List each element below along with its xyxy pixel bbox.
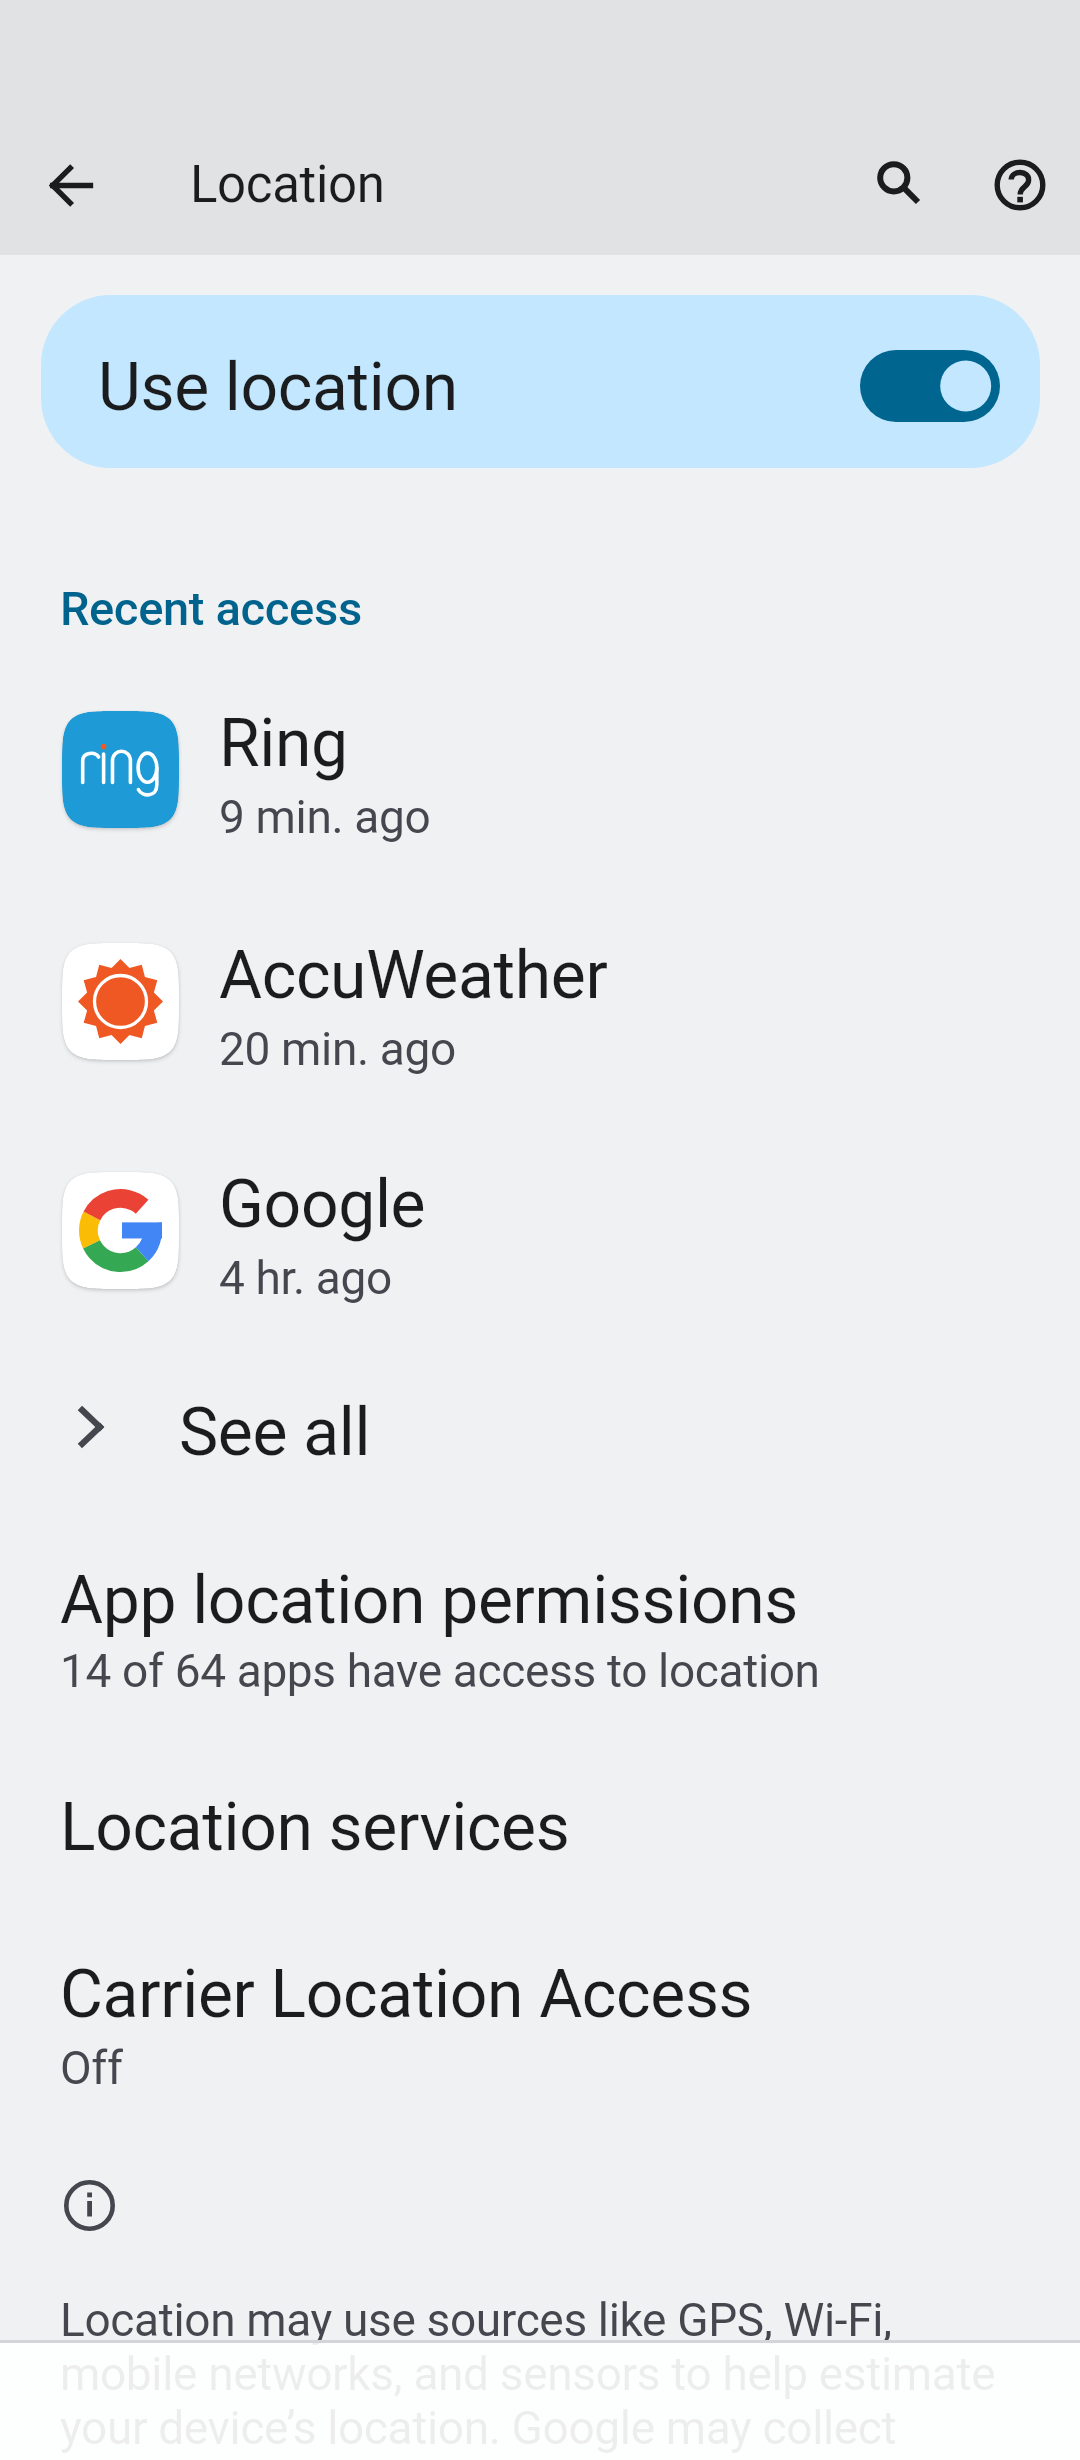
staticText: Off [60, 2041, 123, 2095]
button[interactable]: Help [972, 137, 1068, 233]
staticText: Ring [219, 705, 348, 782]
button[interactable]: AccuWeather [0, 917, 1080, 1117]
staticText: Google [219, 1166, 426, 1243]
staticText: Location [190, 155, 385, 215]
button[interactable]: Search [851, 135, 947, 231]
staticText: Carrier Location Access [60, 1956, 753, 2033]
staticText: App location permissions [60, 1562, 799, 1639]
staticText: Location may use sources like GPS, Wi-Fi… [60, 2293, 1030, 2455]
button[interactable]: Location services [0, 1775, 1080, 1885]
staticText: Recent access [60, 581, 362, 636]
staticText: See all [179, 1394, 371, 1471]
staticText: 4 hr. ago [219, 1251, 392, 1305]
button[interactable]: App location permissions [0, 1545, 1080, 1710]
button[interactable]: Use location [41, 295, 1040, 468]
staticText: Use location [98, 349, 458, 426]
staticText: 9 min. ago [219, 790, 431, 844]
button[interactable]: Google [0, 1146, 1080, 1346]
staticText: 14 of 64 apps have access to location [60, 1644, 820, 1698]
button[interactable]: See all [0, 1358, 1080, 1478]
button[interactable]: Ring [0, 685, 1080, 885]
staticText: Location services [60, 1789, 570, 1866]
staticText: AccuWeather [219, 937, 608, 1014]
button[interactable]: Back [22, 137, 118, 233]
staticText: 20 min. ago [219, 1022, 456, 1076]
button[interactable]: Carrier Location Access [0, 1940, 1080, 2110]
